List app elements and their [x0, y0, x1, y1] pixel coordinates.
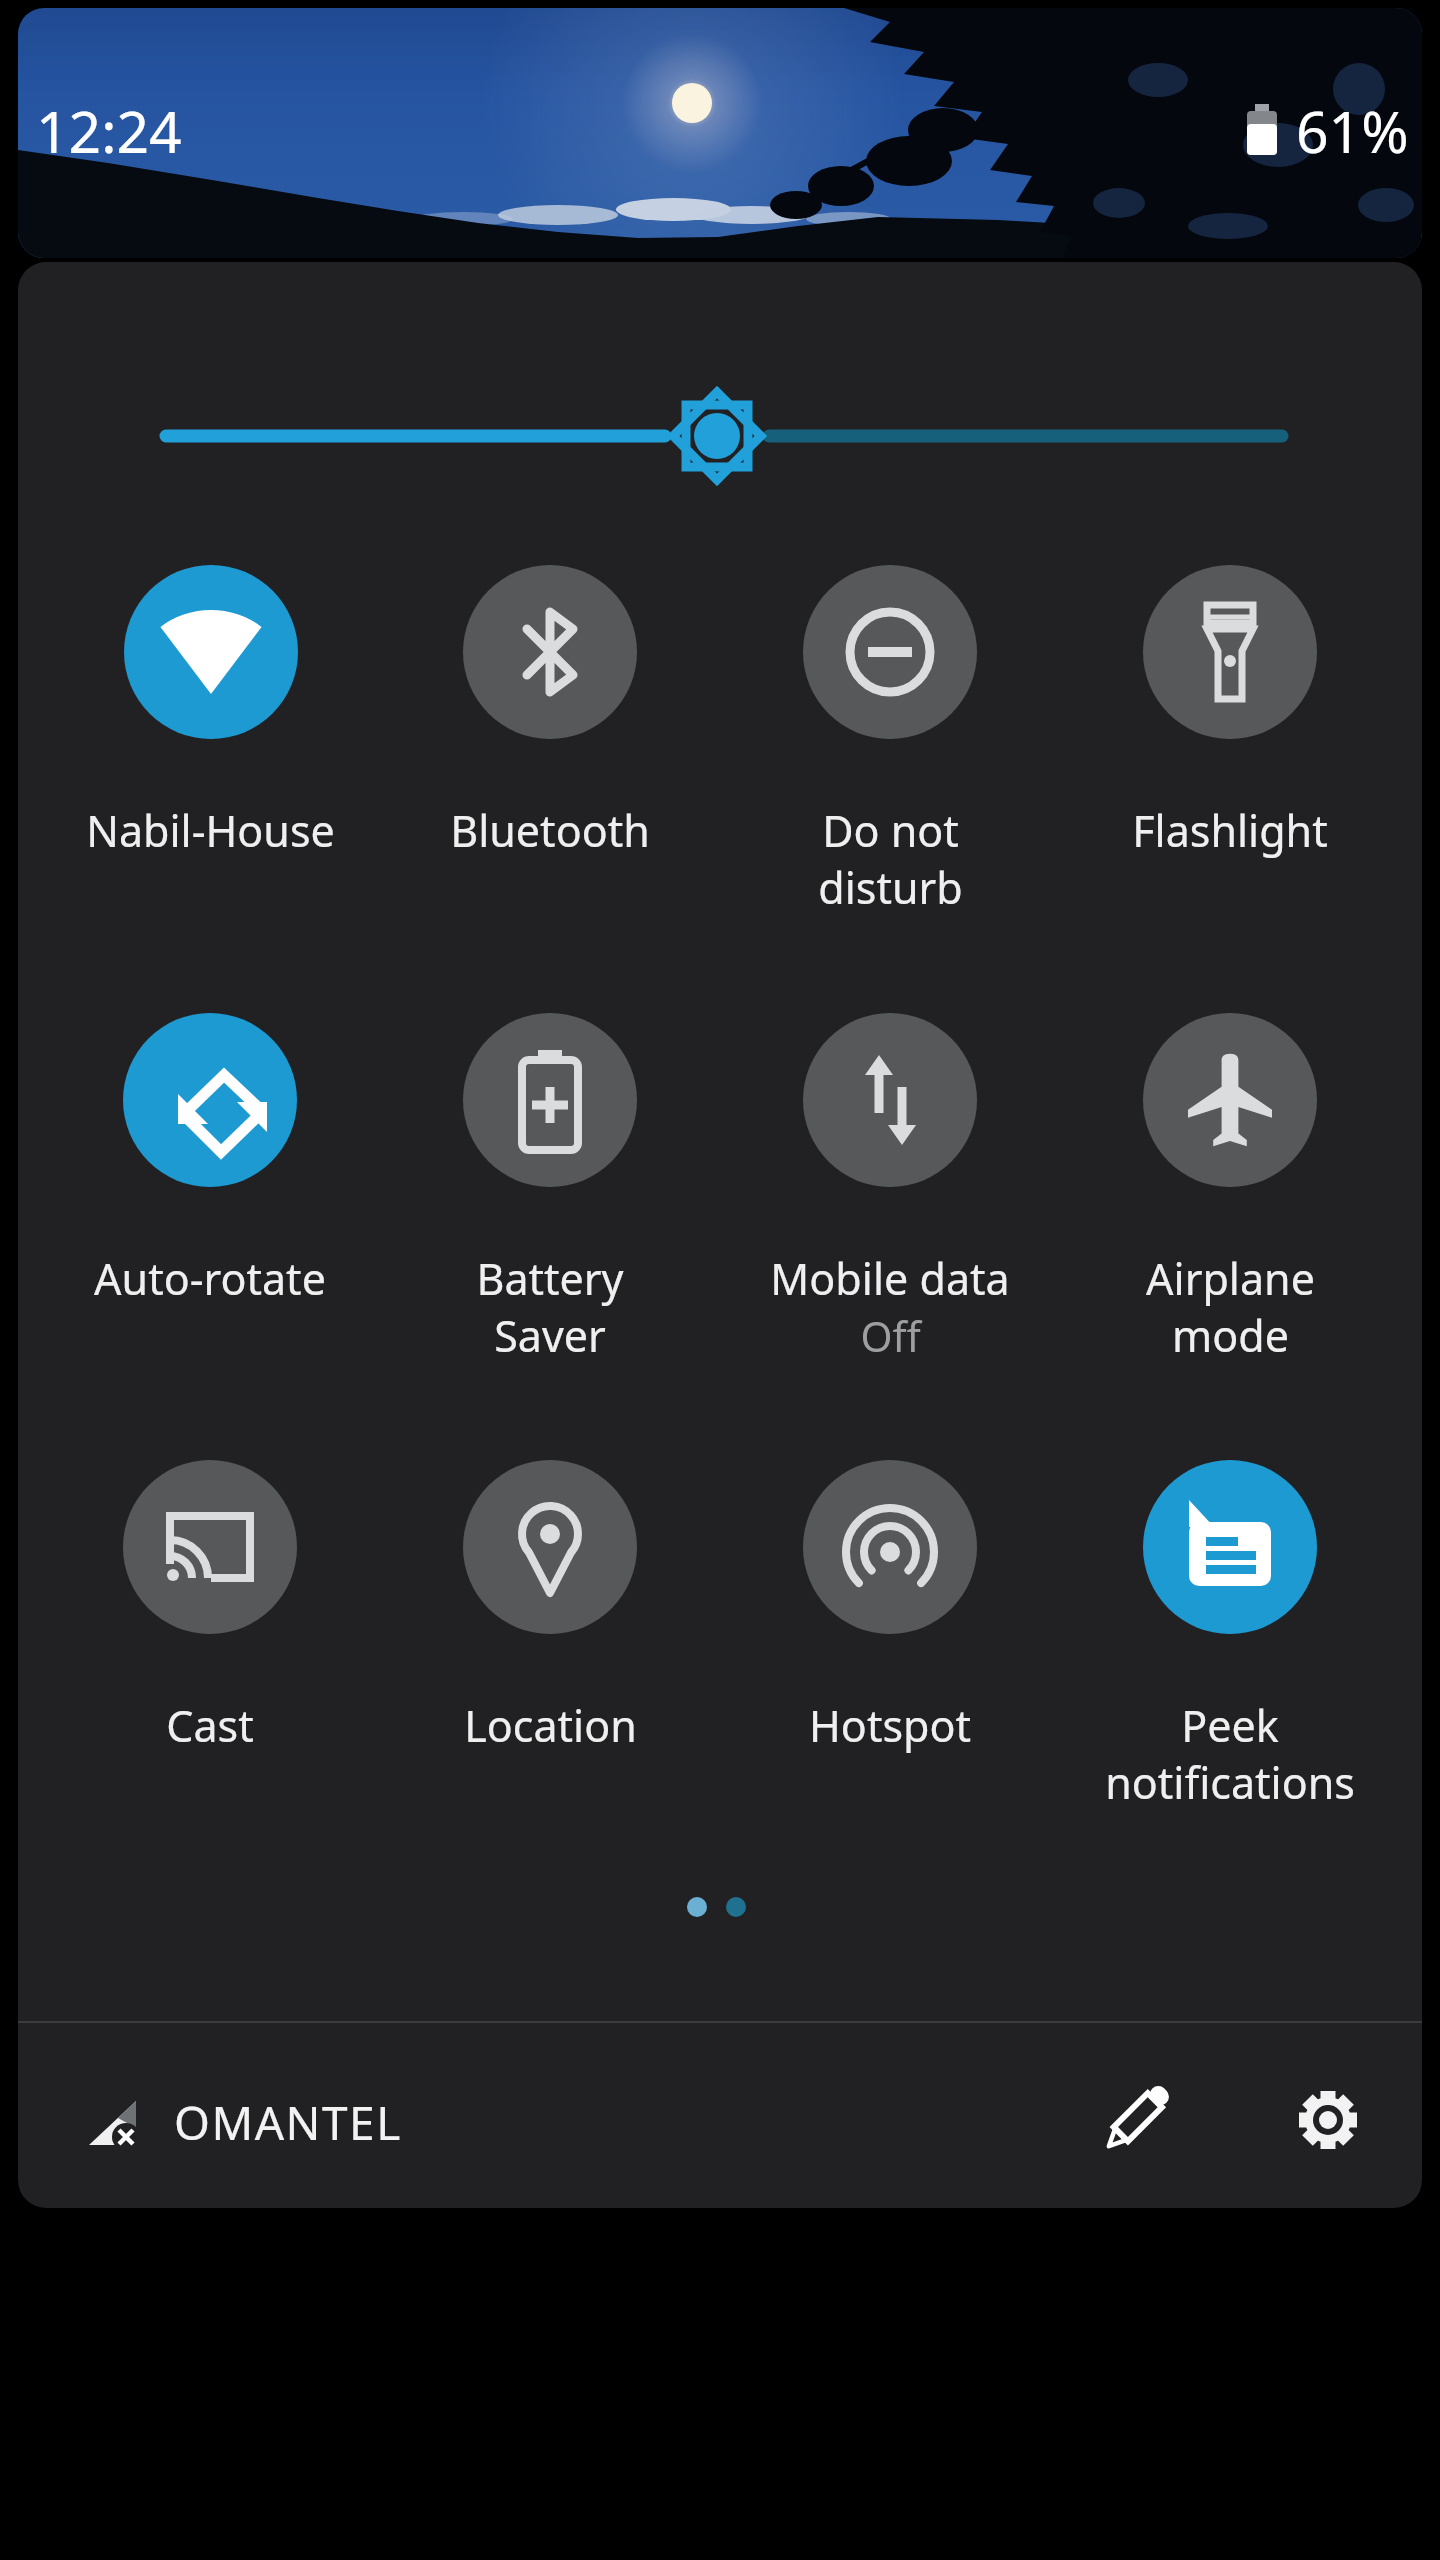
button[interactable]: Airplane mode: [1060, 1013, 1400, 1403]
button[interactable]: [1085, 2070, 1185, 2170]
staticText: Bluetooth: [450, 801, 650, 860]
button[interactable]: Cast: [40, 1460, 380, 1850]
staticText: Airplane mode: [1146, 1249, 1315, 1364]
staticText: Battery Saver: [476, 1249, 624, 1364]
staticText: Flashlight: [1132, 801, 1328, 860]
staticText: Hotspot: [809, 1696, 971, 1755]
staticText: Mobile data: [770, 1249, 1010, 1308]
staticText: 61%: [1296, 92, 1409, 170]
staticText: Cast: [166, 1696, 254, 1755]
staticText: Nabil-House: [86, 801, 335, 860]
button[interactable]: Nabil-House: [40, 565, 380, 955]
button[interactable]: Do not disturb: [720, 565, 1060, 955]
button[interactable]: Location: [380, 1460, 720, 1850]
staticText: Off: [860, 1308, 921, 1364]
staticText: Peek notifications: [1105, 1696, 1355, 1811]
button[interactable]: Bluetooth: [380, 565, 720, 955]
button[interactable]: [1278, 2070, 1378, 2170]
staticText: Do not disturb: [818, 801, 963, 916]
button[interactable]: Mobile data: [720, 1013, 1060, 1403]
button[interactable]: Flashlight: [1060, 565, 1400, 955]
staticText: 12:24: [36, 92, 182, 170]
staticText: Location: [464, 1696, 637, 1755]
button[interactable]: Battery Saver: [380, 1013, 720, 1403]
button[interactable]: OMANTEL: [68, 2082, 398, 2162]
button[interactable]: Auto-rotate: [40, 1013, 380, 1403]
button[interactable]: Hotspot: [720, 1460, 1060, 1850]
button[interactable]: Peek notifications: [1060, 1460, 1400, 1850]
staticText: Auto-rotate: [94, 1249, 326, 1308]
staticText: OMANTEL: [174, 2091, 402, 2154]
